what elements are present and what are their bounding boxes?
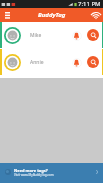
button[interactable]: Alarm <box>71 30 82 41</box>
button[interactable]: Annie <box>0 49 103 75</box>
button[interactable]: Open navigation menu <box>0 8 14 22</box>
staticText: 7:11 PM <box>78 0 101 8</box>
button[interactable]: WiFi <box>90 9 102 21</box>
button[interactable]: Locate <box>87 29 99 41</box>
staticText: BuddyTag <box>38 11 66 19</box>
staticText: Need more tags? <box>14 168 48 173</box>
button[interactable]: Need more tags? <box>0 163 103 183</box>
staticText: Visit www.MyBuddyTag.com <box>14 173 54 177</box>
staticText: Annie <box>30 59 44 66</box>
button[interactable]: Alarm <box>71 57 82 68</box>
button[interactable]: Locate <box>87 56 99 68</box>
button[interactable]: Mike <box>0 22 103 48</box>
staticText: Mike <box>30 32 42 39</box>
